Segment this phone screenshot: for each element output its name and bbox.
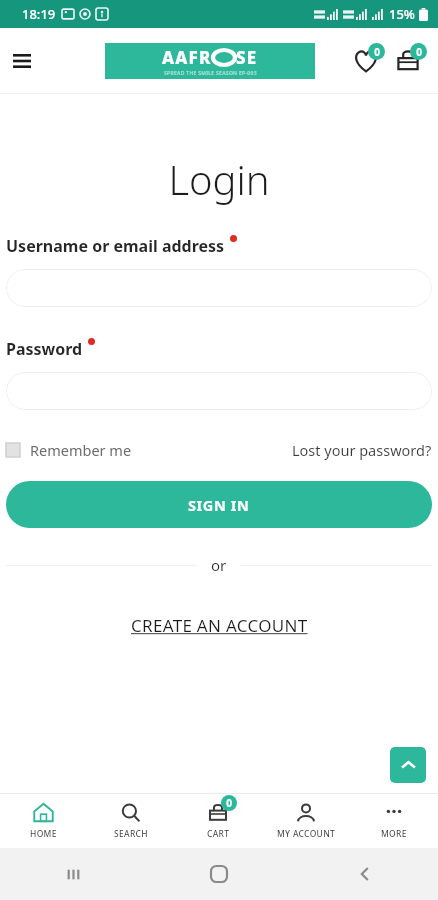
staticText: 0 xyxy=(374,45,380,59)
staticText: Login xyxy=(6,152,432,206)
staticText: or xyxy=(211,555,227,575)
staticText: CREATE AN ACCOUNT xyxy=(131,614,308,637)
button[interactable]: HOME xyxy=(0,794,87,848)
button[interactable]: SIGN IN xyxy=(6,481,432,528)
staticText: CART xyxy=(207,828,230,840)
staticText: Username or email address xyxy=(6,235,225,257)
button[interactable]: Remember me xyxy=(6,440,132,460)
staticText: SE xyxy=(236,46,258,69)
staticText: 15% xyxy=(389,5,415,23)
button[interactable]: Menu xyxy=(4,43,40,79)
button[interactable]: Cart xyxy=(388,41,428,81)
button[interactable]: MY ACCOUNT xyxy=(262,794,350,848)
staticText: SPREAD THE SMILE SEASON EP-003 xyxy=(164,70,257,77)
button[interactable]: Aafrose home xyxy=(105,43,315,79)
staticText: 18:19 xyxy=(22,5,56,23)
staticText: HOME xyxy=(30,828,57,840)
button[interactable]: Home xyxy=(146,848,292,900)
staticText: 0 xyxy=(416,45,422,59)
staticText: AAFR xyxy=(162,46,212,69)
staticText: SEARCH xyxy=(114,828,148,840)
staticText: SIGN IN xyxy=(188,495,250,515)
staticText: 0 xyxy=(226,796,232,810)
button[interactable]: MORE xyxy=(350,794,438,848)
button[interactable]: 0 xyxy=(174,794,262,848)
button[interactable]: Lost your password? xyxy=(292,440,432,460)
staticText: Remember me xyxy=(30,440,132,460)
staticText: MY ACCOUNT xyxy=(277,828,336,840)
button[interactable] xyxy=(6,372,432,410)
staticText: Lost your password? xyxy=(292,440,432,460)
button[interactable]: CREATE AN ACCOUNT xyxy=(6,614,432,637)
button[interactable]: SEARCH xyxy=(87,794,174,848)
button[interactable]: Back xyxy=(292,848,438,900)
staticText: Password xyxy=(6,338,83,360)
staticText: MORE xyxy=(381,828,407,840)
button[interactable]: Scroll to top xyxy=(390,747,426,783)
button[interactable]: Recents xyxy=(0,848,146,900)
button[interactable] xyxy=(6,269,432,307)
button[interactable]: Wishlist xyxy=(346,41,386,81)
